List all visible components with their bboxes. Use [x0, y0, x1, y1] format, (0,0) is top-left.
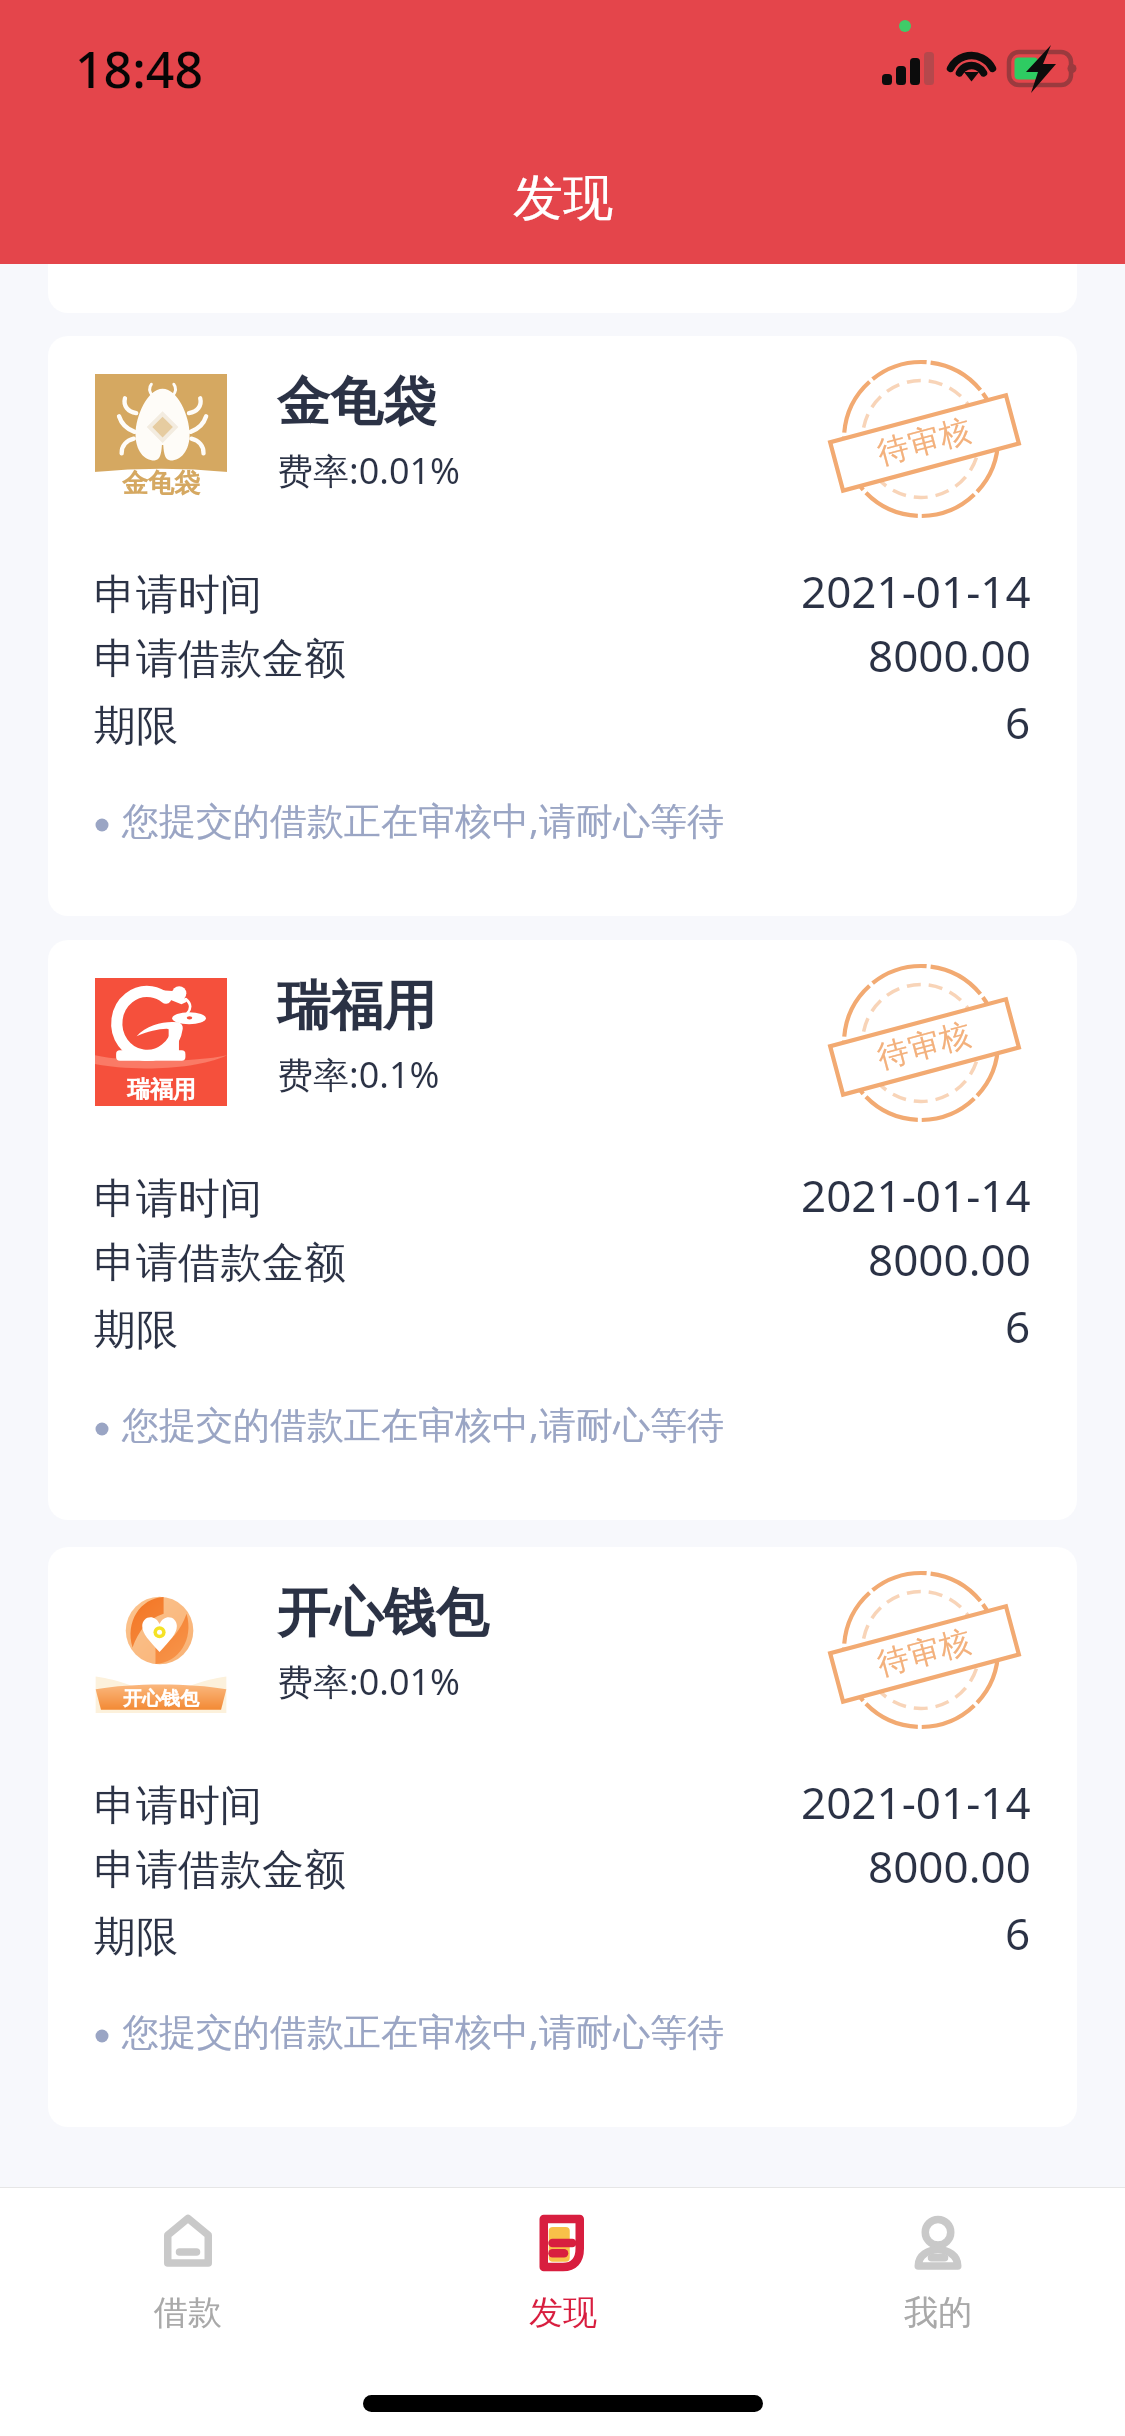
- staticText: 您提交的借款正在审核中,请耐心等待: [122, 2005, 724, 2056]
- staticText: 费率:0.1%: [277, 1050, 440, 1099]
- staticText: 申请借款金额: [94, 1844, 346, 1897]
- staticText: 2021-01-14: [801, 1165, 1031, 1225]
- staticText: 您提交的借款正在审核中,请耐心等待: [122, 1398, 724, 1449]
- staticText: 我的: [904, 2291, 972, 2334]
- staticText: 期限: [94, 700, 178, 753]
- button[interactable]: 借款 Loans: [0, 2188, 375, 2334]
- button[interactable]: 瑞福用: [48, 940, 1077, 1520]
- staticText: 金龟袋: [122, 467, 200, 500]
- staticText: 18:48: [75, 35, 203, 103]
- staticText: 期限: [94, 1304, 178, 1357]
- staticText: 费率:0.01%: [277, 446, 460, 495]
- button[interactable]: 开心钱包: [48, 1547, 1077, 2127]
- staticText: 8000.00: [868, 1229, 1031, 1289]
- button[interactable]: 我的 Profile: [750, 2188, 1125, 2334]
- staticText: 开心钱包: [123, 1687, 199, 1711]
- staticText: 待审核: [873, 1621, 975, 1684]
- staticText: 8000.00: [868, 625, 1031, 685]
- staticText: 发现: [513, 167, 613, 230]
- staticText: 发现: [529, 2291, 597, 2334]
- staticText: 2021-01-14: [801, 561, 1031, 621]
- staticText: 申请借款金额: [94, 633, 346, 686]
- staticText: 6: [1005, 1903, 1031, 1963]
- staticText: 6: [1005, 1296, 1031, 1356]
- staticText: 申请时间: [94, 1173, 262, 1226]
- staticText: 2021-01-14: [801, 1772, 1031, 1832]
- staticText: 待审核: [873, 410, 975, 473]
- staticText: 瑞福用: [277, 973, 436, 1040]
- staticText: 开心钱包: [277, 1580, 489, 1647]
- button[interactable]: 发现 Discover: [375, 2188, 750, 2334]
- staticText: 申请时间: [94, 1780, 262, 1833]
- staticText: 6: [1005, 692, 1031, 752]
- staticText: 借款: [154, 2291, 222, 2334]
- staticText: 申请借款金额: [94, 1237, 346, 1290]
- staticText: 您提交的借款正在审核中,请耐心等待: [122, 794, 724, 845]
- staticText: 费率:0.01%: [277, 1657, 460, 1706]
- staticText: 金龟袋: [277, 369, 436, 436]
- staticText: 8000.00: [868, 1836, 1031, 1896]
- button[interactable]: 金龟袋: [48, 336, 1077, 916]
- staticText: 期限: [94, 1911, 178, 1964]
- staticText: 待审核: [873, 1014, 975, 1077]
- staticText: 申请时间: [94, 569, 262, 622]
- staticText: 瑞福用: [127, 1075, 196, 1104]
